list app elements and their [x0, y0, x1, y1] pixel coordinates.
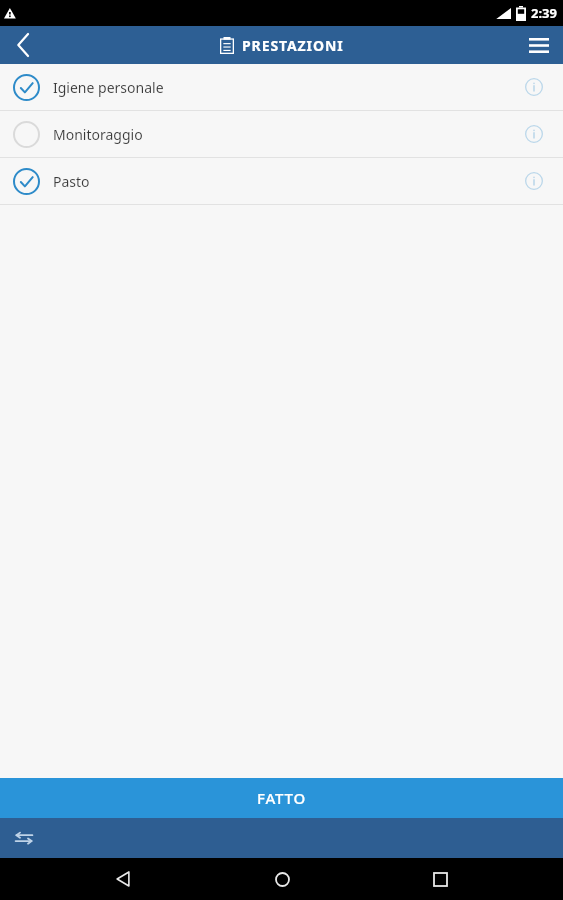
button[interactable]: Back [0, 26, 46, 64]
button[interactable]: Recents [405, 858, 475, 900]
staticText: FATTO [257, 788, 307, 808]
button[interactable]: Info Monitoraggio [519, 119, 549, 149]
staticText: Monitoraggio [53, 125, 143, 144]
button[interactable]: Pasto [0, 158, 563, 204]
staticText: 2:39 [531, 4, 557, 22]
button[interactable]: Menu [515, 26, 563, 64]
staticText: Igiene personale [53, 78, 164, 97]
button[interactable]: Switch [0, 818, 48, 858]
button[interactable]: Home [247, 858, 317, 900]
button[interactable]: Back [88, 858, 158, 900]
button[interactable]: Monitoraggio [0, 111, 563, 157]
staticText: Pasto [53, 172, 90, 191]
staticText: PRESTAZIONI [242, 36, 344, 55]
button[interactable]: Igiene personale [0, 64, 563, 110]
button[interactable]: Info Igiene personale [519, 72, 549, 102]
button[interactable]: Info Pasto [519, 166, 549, 196]
button[interactable]: FATTO [0, 778, 563, 818]
